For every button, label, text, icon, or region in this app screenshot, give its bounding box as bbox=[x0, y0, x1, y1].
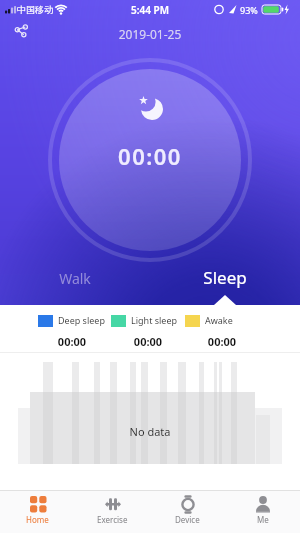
button[interactable]: Home bbox=[0, 490, 75, 533]
button[interactable]: Me bbox=[225, 490, 300, 533]
staticText: Home bbox=[26, 514, 49, 525]
staticText: 00:00 bbox=[172, 334, 272, 349]
staticText: 00:00 bbox=[0, 141, 300, 171]
staticText: Sleep bbox=[150, 266, 300, 289]
staticText: 00:00 bbox=[22, 334, 122, 349]
staticText: Deep sleep bbox=[58, 314, 105, 326]
staticText: Awake bbox=[205, 314, 233, 326]
staticText: Exercise bbox=[97, 514, 128, 525]
staticText: Light sleep bbox=[131, 314, 178, 326]
staticText: 中国移动 bbox=[17, 4, 53, 15]
staticText: 93% bbox=[240, 4, 258, 16]
staticText: 5:44 PM bbox=[0, 3, 300, 17]
button[interactable]: Sleep bbox=[150, 266, 300, 289]
button[interactable]: Walk bbox=[0, 269, 150, 288]
staticText: Me bbox=[257, 514, 269, 525]
button[interactable] bbox=[12, 22, 32, 42]
button[interactable]: Device bbox=[150, 490, 225, 533]
staticText: No data bbox=[0, 424, 300, 439]
staticText: 2019-01-25 bbox=[0, 26, 300, 42]
staticText: Walk bbox=[0, 269, 150, 288]
staticText: Device bbox=[175, 514, 200, 525]
staticText: 00:00 bbox=[98, 334, 198, 349]
button[interactable]: Exercise bbox=[75, 490, 150, 533]
